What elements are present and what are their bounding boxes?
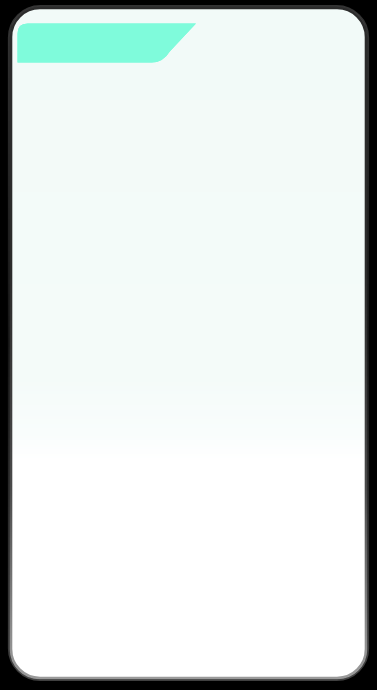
button[interactable]: Device screen [0,0,377,690]
